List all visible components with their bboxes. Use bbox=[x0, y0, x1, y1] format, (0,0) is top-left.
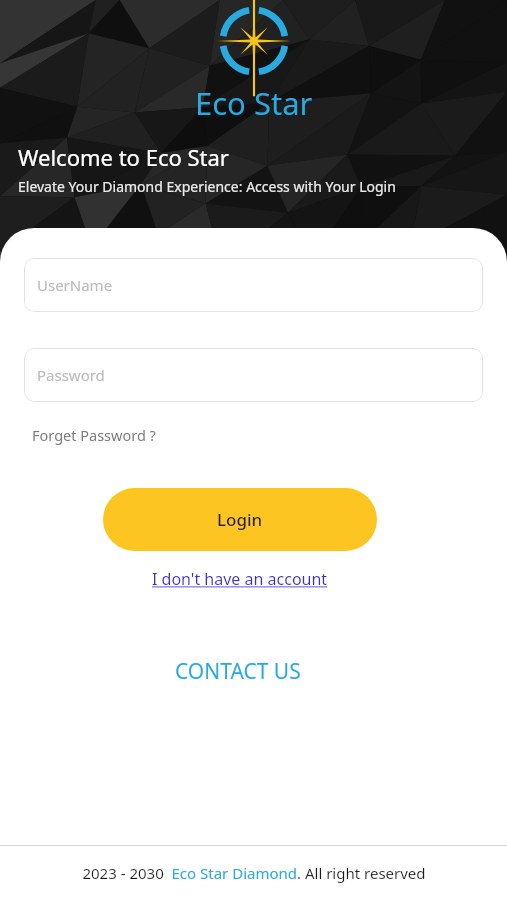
button[interactable]: Password bbox=[24, 348, 483, 402]
staticText: 2023 - 2030 Eco Star Diamond. All right … bbox=[82, 863, 426, 883]
staticText: Login bbox=[217, 508, 263, 531]
staticText: I don't have an account bbox=[152, 568, 328, 590]
staticText: Elevate Your Diamond Experience: Access … bbox=[18, 177, 396, 196]
button[interactable]: Login bbox=[103, 488, 377, 551]
staticText: Forget Password ? bbox=[32, 425, 156, 445]
staticText: Welcome to Eco Star bbox=[18, 142, 229, 172]
button[interactable]: CONTACT US bbox=[167, 653, 309, 690]
staticText: Eco Star bbox=[195, 82, 313, 124]
button[interactable]: Forget Password ? bbox=[24, 420, 164, 450]
staticText: Password bbox=[37, 365, 105, 385]
staticText: UserName bbox=[37, 275, 113, 295]
button[interactable]: I don't have an account bbox=[146, 565, 334, 593]
button[interactable]: UserName bbox=[24, 258, 483, 312]
staticText: CONTACT US bbox=[175, 657, 301, 686]
